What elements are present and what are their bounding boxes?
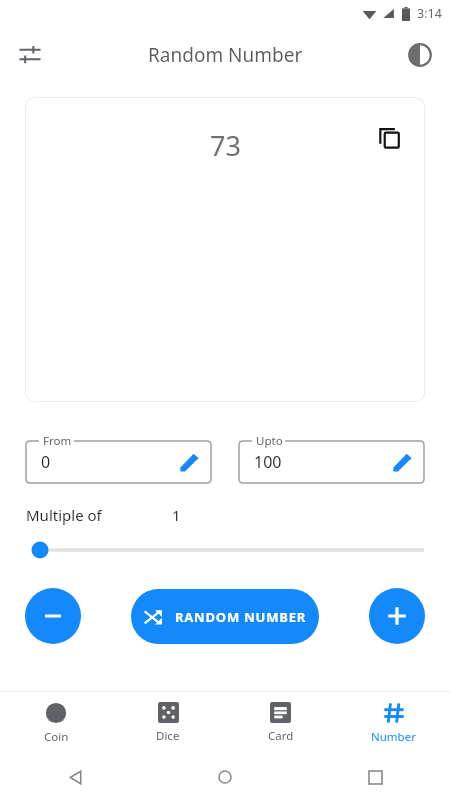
staticText: 0 (41, 451, 51, 473)
staticText: 73 (210, 127, 241, 164)
button[interactable]: Dice (112, 692, 224, 754)
staticText: 100 (254, 451, 282, 473)
staticText: Card (268, 728, 294, 744)
button[interactable]: From (25, 432, 212, 484)
button[interactable]: Multiple of slider (26, 537, 424, 563)
button[interactable]: Settings (8, 33, 52, 77)
button[interactable]: Copy (373, 121, 407, 155)
staticText: 1 (172, 505, 181, 525)
staticText: RANDOM NUMBER (175, 608, 307, 626)
staticText: From (43, 433, 72, 449)
staticText: Dice (156, 728, 180, 744)
staticText: 3:14 (417, 5, 442, 22)
button[interactable]: Increase (369, 588, 425, 644)
button[interactable]: Coin (0, 692, 112, 754)
staticText: Number (371, 729, 416, 745)
button[interactable]: RANDOM NUMBER (131, 589, 319, 644)
staticText: Upto (256, 433, 283, 449)
button[interactable]: Card (224, 692, 337, 754)
button[interactable]: Upto (238, 432, 425, 484)
button[interactable]: Number (337, 692, 450, 754)
button[interactable]: Edit From (176, 449, 202, 475)
button[interactable]: Toggle theme (400, 35, 440, 75)
staticText: Random Number (148, 42, 303, 68)
button[interactable]: Edit Upto (389, 449, 415, 475)
staticText: Coin (44, 729, 69, 745)
staticText: Multiple of (26, 505, 102, 525)
button[interactable]: Decrease (25, 588, 81, 644)
